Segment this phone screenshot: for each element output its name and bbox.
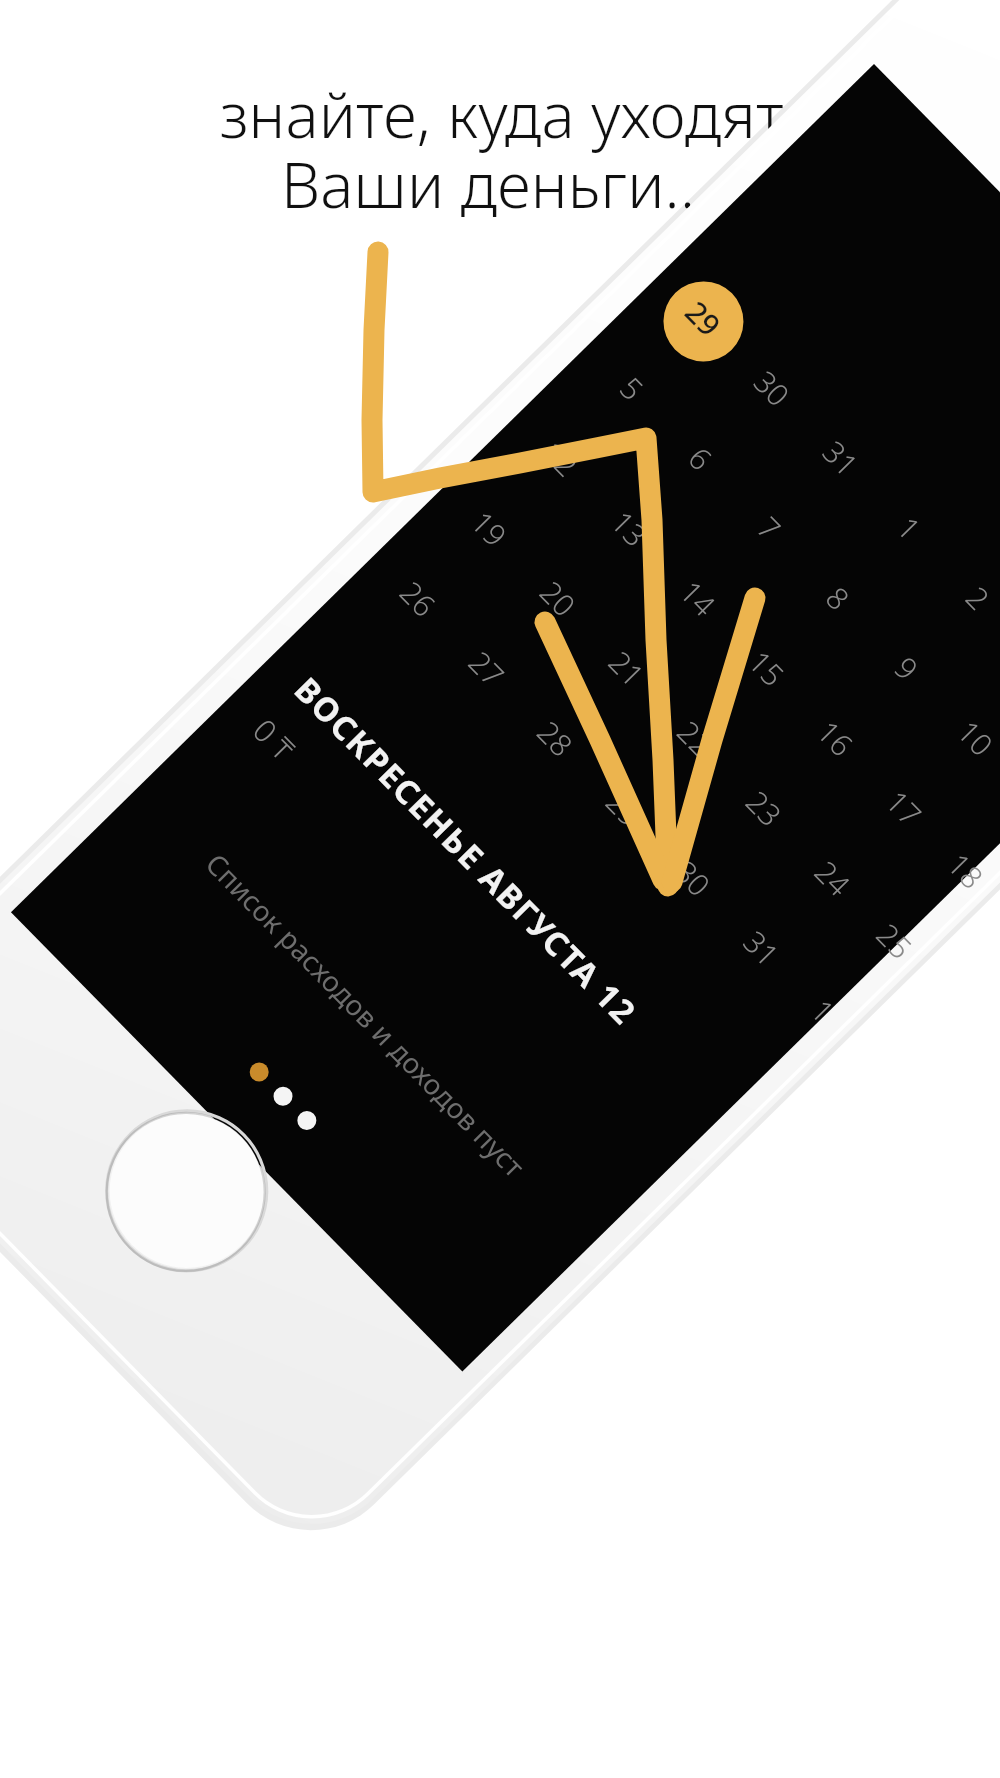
other: Arrow pointing to phone screen (0, 0, 1000, 1778)
button[interactable] (0, 0, 1000, 1778)
